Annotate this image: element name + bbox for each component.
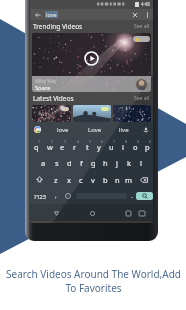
button[interactable]: Favorite	[32, 33, 151, 92]
staticText: 5	[89, 139, 92, 144]
staticText: 6	[101, 139, 104, 144]
button[interactable]: 6	[93, 137, 105, 154]
button[interactable]: a	[37, 154, 50, 171]
button[interactable]: c	[75, 171, 87, 188]
staticText: s	[55, 158, 59, 168]
staticText: Love	[88, 126, 102, 134]
button[interactable]	[32, 105, 71, 122]
other: Play	[84, 51, 99, 66]
button[interactable]: s	[50, 154, 63, 171]
button[interactable]: ?123	[30, 188, 50, 204]
button[interactable]: live	[119, 126, 129, 134]
other: Back	[35, 12, 41, 18]
staticText: h	[103, 158, 108, 168]
button[interactable]: v	[87, 171, 99, 188]
staticText: t	[86, 142, 89, 152]
staticText: r	[73, 142, 77, 152]
staticText: ,	[55, 192, 57, 200]
button[interactable]: d	[63, 154, 75, 171]
staticText: e	[60, 142, 65, 152]
staticText: m	[125, 175, 133, 185]
button[interactable]: ,	[50, 188, 61, 204]
button[interactable]: 3	[56, 137, 69, 154]
button[interactable]	[113, 105, 151, 122]
button[interactable]: See all	[134, 23, 150, 30]
button[interactable]: Home	[86, 207, 98, 219]
staticText: 4:48	[141, 1, 150, 7]
staticText: w	[47, 142, 53, 152]
staticText: c	[79, 175, 83, 185]
staticText: Milky Way	[35, 78, 57, 84]
staticText: 2	[51, 139, 54, 144]
button[interactable]: 2	[43, 137, 56, 154]
staticText: 1	[38, 139, 41, 144]
staticText: Trending Videos	[33, 22, 83, 31]
button[interactable]: l	[135, 154, 147, 171]
button[interactable]: Favorite	[133, 36, 150, 42]
button[interactable]: Love	[88, 126, 102, 134]
button[interactable]: 8	[117, 137, 129, 154]
button[interactable]: 5	[81, 137, 93, 154]
staticText: Search Videos Around The World,Add To Fa…	[6, 267, 181, 295]
staticText: i	[122, 142, 124, 152]
staticText: .	[131, 192, 133, 200]
staticText: j	[116, 158, 118, 168]
button[interactable]: Emoji	[61, 188, 74, 204]
staticText: d	[67, 158, 72, 168]
button[interactable]: g	[87, 154, 99, 171]
staticText: n	[115, 175, 120, 185]
button[interactable]: Search	[136, 192, 153, 200]
staticText: ?123	[34, 193, 46, 200]
staticText: love	[46, 11, 57, 18]
staticText: o	[133, 142, 138, 152]
staticText: live	[119, 126, 129, 134]
button[interactable]	[73, 105, 111, 122]
other: Voice input	[143, 127, 149, 133]
button[interactable]: Back	[30, 9, 153, 20]
button[interactable]: 0	[141, 137, 153, 154]
button[interactable]: See all	[134, 95, 150, 102]
button[interactable]: Back	[50, 207, 62, 219]
staticText: l	[140, 158, 142, 168]
button[interactable]: x	[62, 171, 75, 188]
staticText: 9	[137, 139, 140, 144]
staticText: 0	[149, 139, 152, 144]
staticText: Space	[35, 84, 51, 91]
staticText: a	[41, 158, 46, 168]
staticText: See all	[134, 95, 150, 102]
button[interactable]: n	[111, 171, 123, 188]
button[interactable]: b	[99, 171, 111, 188]
staticText: 3	[64, 139, 67, 144]
other: Google	[34, 126, 41, 133]
button[interactable]: Recents	[122, 207, 134, 219]
staticText: Latest Videos	[33, 94, 74, 103]
staticText: x	[67, 175, 71, 185]
staticText: y	[97, 142, 101, 152]
staticText: 8	[125, 139, 128, 144]
button[interactable]: 1	[30, 137, 43, 154]
button[interactable]: 9	[129, 137, 141, 154]
staticText: z	[54, 175, 58, 185]
staticText: See all	[134, 23, 150, 30]
staticText: f	[80, 158, 83, 168]
button[interactable]: Shift	[30, 171, 49, 188]
staticText: p	[145, 142, 150, 152]
button[interactable]: z	[49, 171, 62, 188]
button[interactable]: j	[111, 154, 123, 171]
button[interactable]: h	[99, 154, 111, 171]
button[interactable]: 4	[69, 137, 81, 154]
button[interactable]: Keyboard	[136, 207, 148, 219]
staticText: 4	[77, 139, 80, 144]
button[interactable]: 7	[105, 137, 117, 154]
button[interactable]: f	[75, 154, 87, 171]
staticText: q	[34, 142, 39, 152]
staticText: k	[127, 158, 132, 168]
button[interactable]: .	[129, 188, 135, 204]
staticText: u	[109, 142, 114, 152]
button[interactable]: m	[123, 171, 135, 188]
staticText: love	[57, 126, 69, 134]
button[interactable]: love	[57, 126, 69, 134]
button[interactable]: k	[123, 154, 135, 171]
button[interactable]: Backspace	[135, 171, 153, 188]
